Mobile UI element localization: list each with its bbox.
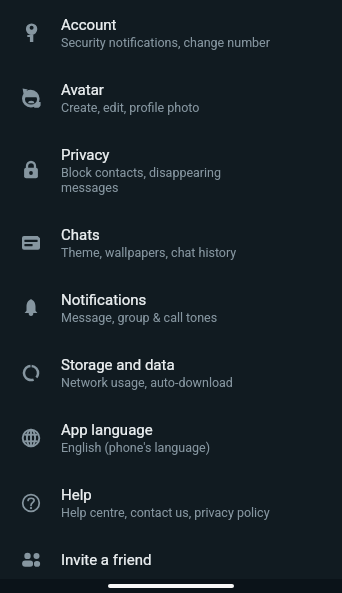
staticText: Notifications [61, 287, 147, 310]
staticText: App language [61, 417, 153, 440]
button[interactable]: Account [0, 0, 342, 65]
staticText: Theme, wallpapers, chat history [61, 245, 237, 260]
button[interactable]: Storage and data [0, 340, 342, 405]
staticText: Chats [61, 222, 100, 245]
staticText: Invite a friend [61, 547, 152, 570]
button[interactable]: Chats [0, 210, 342, 275]
button[interactable]: Notifications [0, 275, 342, 340]
button[interactable]: Invite a friend [0, 535, 342, 585]
staticText: Avatar [61, 77, 104, 100]
staticText: Message, group & call tones [61, 310, 218, 325]
staticText: Account [61, 12, 117, 35]
staticText: Help [61, 482, 92, 505]
staticText: Privacy [61, 142, 110, 165]
button[interactable]: Help [0, 470, 342, 535]
button[interactable]: Privacy [0, 130, 342, 210]
staticText: Storage and data [61, 352, 175, 375]
staticText: Help centre, contact us, privacy policy [61, 505, 270, 520]
staticText: English (phone's language) [61, 440, 210, 455]
staticText: Create, edit, profile photo [61, 100, 200, 115]
button[interactable]: App language [0, 405, 342, 470]
staticText: Network usage, auto-download [61, 375, 233, 390]
button[interactable]: Avatar [0, 65, 342, 130]
staticText: Security notifications, change number [61, 35, 270, 50]
staticText: Block contacts, disappearing messages [61, 165, 277, 195]
